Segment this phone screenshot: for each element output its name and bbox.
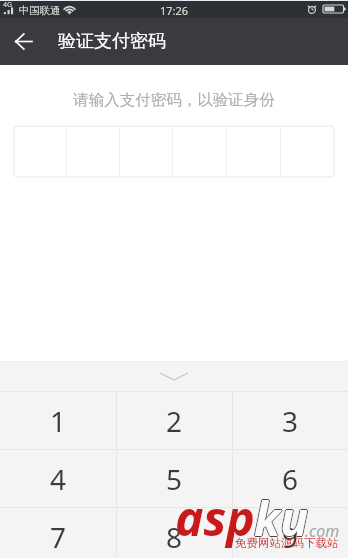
button[interactable] [14, 126, 334, 177]
staticText: ku [254, 488, 308, 551]
staticText: 免费网站源码下载站 [235, 536, 339, 550]
button[interactable]: 3 [233, 392, 348, 449]
staticText: ku [253, 487, 307, 550]
staticText: ku [254, 486, 308, 549]
button[interactable]: 6 [233, 450, 348, 507]
staticText: 7 [50, 518, 67, 556]
staticText: 1 [50, 402, 67, 440]
staticText: 4 [50, 460, 67, 498]
button[interactable]: 5 [117, 450, 232, 507]
button[interactable]: 4 [0, 450, 116, 507]
staticText: 9 [282, 518, 299, 556]
button[interactable]: 7 [0, 508, 116, 558]
staticText: 请输入支付密码，以验证身份 [0, 90, 348, 110]
staticText: 6 [282, 460, 299, 498]
staticText: 17:26 [160, 3, 189, 18]
button[interactable]: 1 [0, 392, 116, 449]
staticText: 4G [3, 0, 13, 10]
staticText: 3 [282, 402, 299, 440]
button[interactable]: 9 [233, 508, 348, 558]
staticText: ku [254, 487, 308, 550]
staticText: 中国联通 [19, 4, 61, 17]
staticText: asp [175, 485, 255, 550]
button[interactable]: 8 [117, 508, 232, 558]
staticText: 验证支付密码 [58, 30, 166, 53]
staticText: 8 [166, 518, 183, 556]
staticText: 5 [166, 460, 183, 498]
staticText: .com [305, 520, 340, 542]
staticText: ku [255, 487, 309, 550]
staticText: 2 [166, 402, 183, 440]
button[interactable]: 2 [117, 392, 232, 449]
button[interactable]: Back [0, 18, 46, 65]
